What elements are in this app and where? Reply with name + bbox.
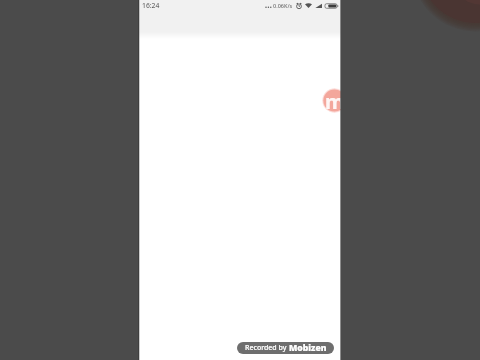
staticText: Mobizen	[289, 342, 327, 354]
staticText: Recorded by	[245, 343, 287, 353]
staticText: m	[325, 88, 341, 113]
button[interactable]: Mobizen recorder	[322, 88, 341, 113]
staticText: 16:24	[142, 1, 160, 10]
staticText: 0.06K/s	[273, 2, 293, 9]
